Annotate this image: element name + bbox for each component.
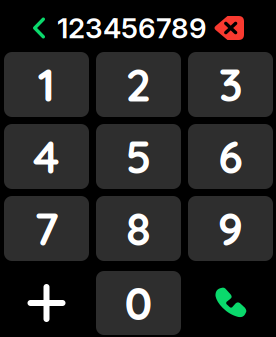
staticText: 1 [37,56,55,113]
staticText: 0 [124,275,152,331]
button[interactable]: Delete [210,8,248,48]
button[interactable]: Back [24,8,54,48]
staticText: 5 [125,128,151,185]
button[interactable]: Add [4,271,89,335]
button[interactable]: 7 [4,196,89,261]
button[interactable]: Call [188,271,273,335]
staticText: 123456789 [57,11,207,45]
staticText: 8 [126,200,151,257]
button[interactable]: 9 [188,196,273,261]
staticText: 4 [33,128,60,185]
staticText: 9 [217,200,243,257]
button[interactable]: 6 [188,124,273,189]
button[interactable]: 2 [96,52,181,117]
staticText: 2 [125,56,151,113]
staticText: 3 [218,56,242,113]
button[interactable]: 5 [96,124,181,189]
staticText: 7 [34,200,59,257]
button[interactable]: 1 [4,52,89,117]
button[interactable]: 3 [188,52,273,117]
button[interactable]: 4 [4,124,89,189]
button[interactable]: 8 [96,196,181,261]
button[interactable]: 0 [96,271,181,335]
staticText: 6 [218,128,243,185]
